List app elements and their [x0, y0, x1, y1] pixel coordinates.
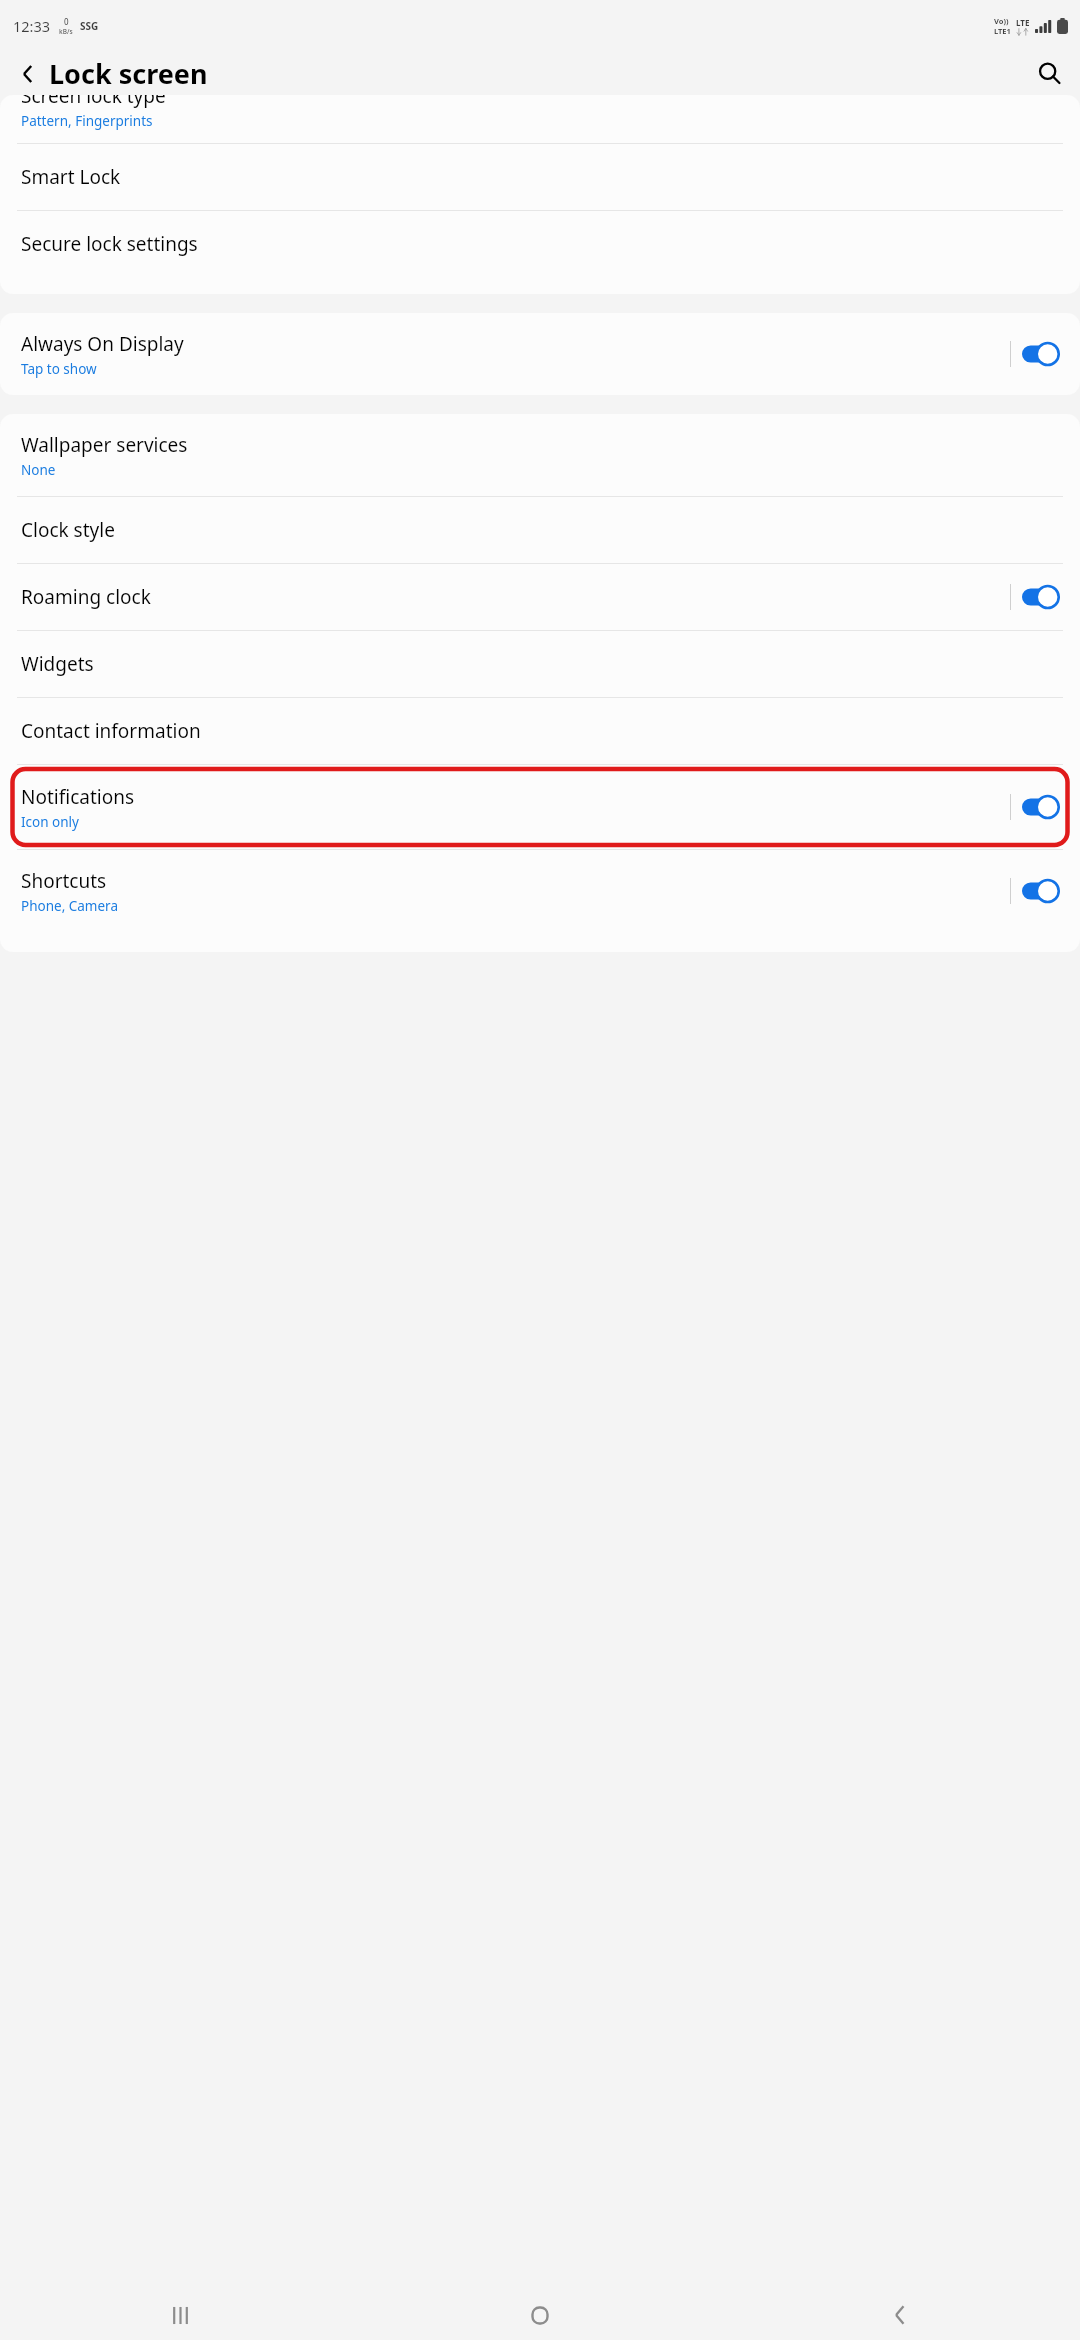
- button[interactable]: Back: [8, 54, 48, 94]
- staticText: Always On Display: [21, 331, 184, 357]
- button[interactable]: Toggle on: [1022, 796, 1059, 818]
- staticText: Phone, Camera: [21, 897, 118, 915]
- staticText: Screen lock type: [21, 95, 166, 109]
- button[interactable]: Widgets: [0, 631, 1080, 697]
- staticText: Shortcuts: [21, 868, 107, 894]
- button[interactable]: Wallpaper services: [0, 414, 1080, 496]
- button[interactable]: Home: [360, 2290, 720, 2340]
- button[interactable]: Roaming clock: [0, 564, 1080, 630]
- button[interactable]: Shortcuts: [0, 850, 1080, 932]
- button[interactable]: Search: [1027, 52, 1071, 95]
- button[interactable]: Clock style: [0, 497, 1080, 563]
- staticText: Secure lock settings: [21, 231, 198, 257]
- staticText: Clock style: [21, 517, 115, 543]
- staticText: Vo)): [994, 16, 1009, 26]
- button[interactable]: Always On Display: [0, 313, 1080, 395]
- staticText: Smart Lock: [21, 164, 121, 190]
- staticText: Roaming clock: [21, 584, 151, 610]
- button[interactable]: Recent apps: [0, 2290, 360, 2340]
- staticText: Pattern, Fingerprints: [21, 112, 153, 130]
- staticText: None: [21, 461, 56, 479]
- staticText: 0: [64, 16, 69, 27]
- button[interactable]: Smart Lock: [0, 144, 1080, 210]
- staticText: Wallpaper services: [21, 432, 188, 458]
- button[interactable]: Screen lock type: [0, 95, 1080, 143]
- staticText: kB/s: [59, 27, 73, 36]
- staticText: LTE1: [994, 26, 1011, 36]
- button[interactable]: Back: [720, 2290, 1080, 2340]
- button[interactable]: Toggle on: [1022, 880, 1059, 902]
- button[interactable]: Toggle on: [1022, 586, 1059, 608]
- staticText: Tap to show: [21, 360, 97, 378]
- button[interactable]: Contact information: [0, 698, 1080, 764]
- staticText: Contact information: [21, 718, 201, 744]
- staticText: SSG: [80, 19, 99, 33]
- button[interactable]: Secure lock settings: [0, 211, 1080, 277]
- staticText: LTE: [1016, 17, 1030, 28]
- staticText: Notifications: [21, 784, 135, 810]
- button[interactable]: Toggle on: [1022, 343, 1059, 365]
- staticText: Icon only: [21, 813, 79, 831]
- button[interactable]: Notifications: [0, 765, 1080, 849]
- staticText: Lock screen: [49, 55, 208, 92]
- staticText: Widgets: [21, 651, 94, 677]
- staticText: 12:33: [13, 16, 51, 36]
